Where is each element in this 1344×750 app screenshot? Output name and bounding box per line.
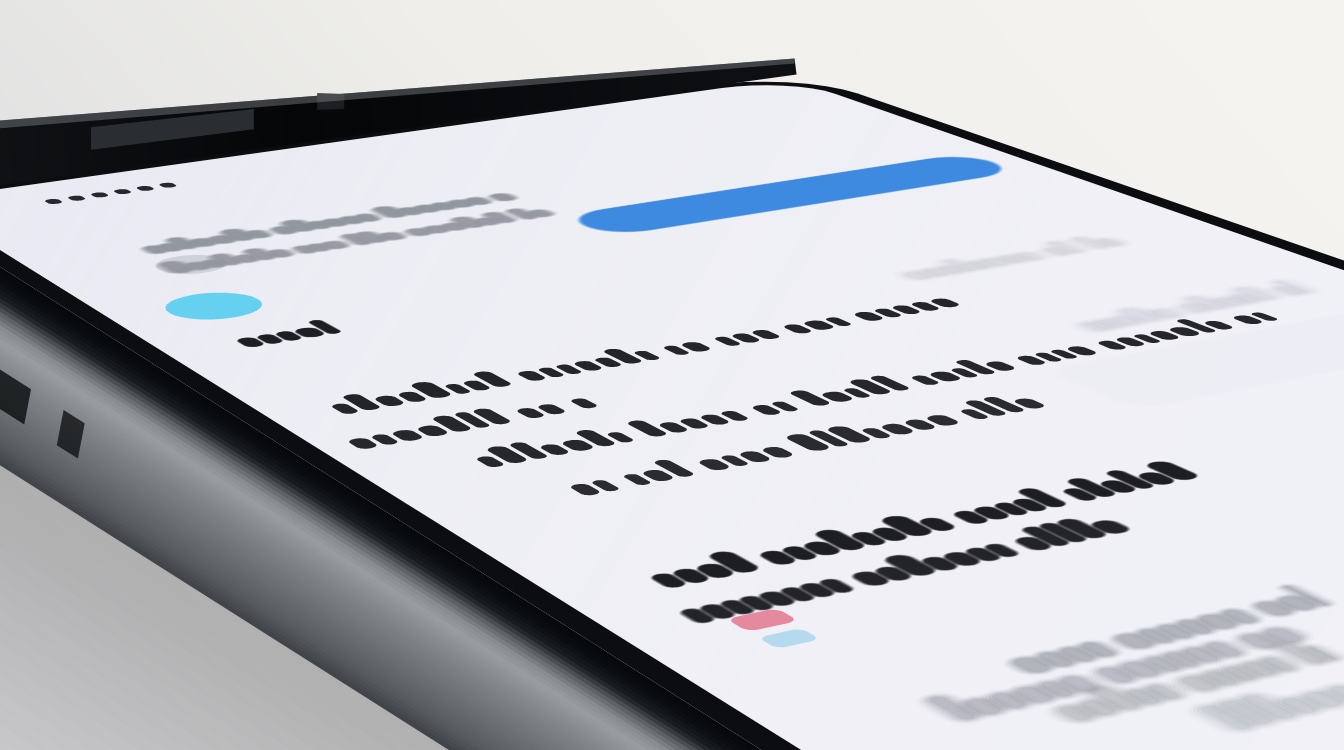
button[interactable]: Phone showing an app screen (0, 0, 1344, 750)
